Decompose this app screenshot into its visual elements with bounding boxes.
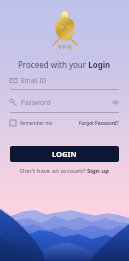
button[interactable]: LOGIN — [10, 146, 119, 162]
button[interactable]: Forgot Password? — [79, 120, 119, 126]
staticText: Remember me — [20, 120, 53, 126]
staticText: LOGIN — [52, 149, 77, 159]
staticText: Email ID — [21, 76, 47, 85]
staticText: VPN — [58, 43, 73, 51]
button[interactable]: Remember me — [10, 120, 53, 126]
staticText: Password — [21, 98, 51, 107]
button[interactable]: Don't have an account? Sign up — [20, 167, 109, 175]
other: Show password — [112, 99, 119, 106]
staticText: Proceed with your Login — [18, 59, 111, 70]
